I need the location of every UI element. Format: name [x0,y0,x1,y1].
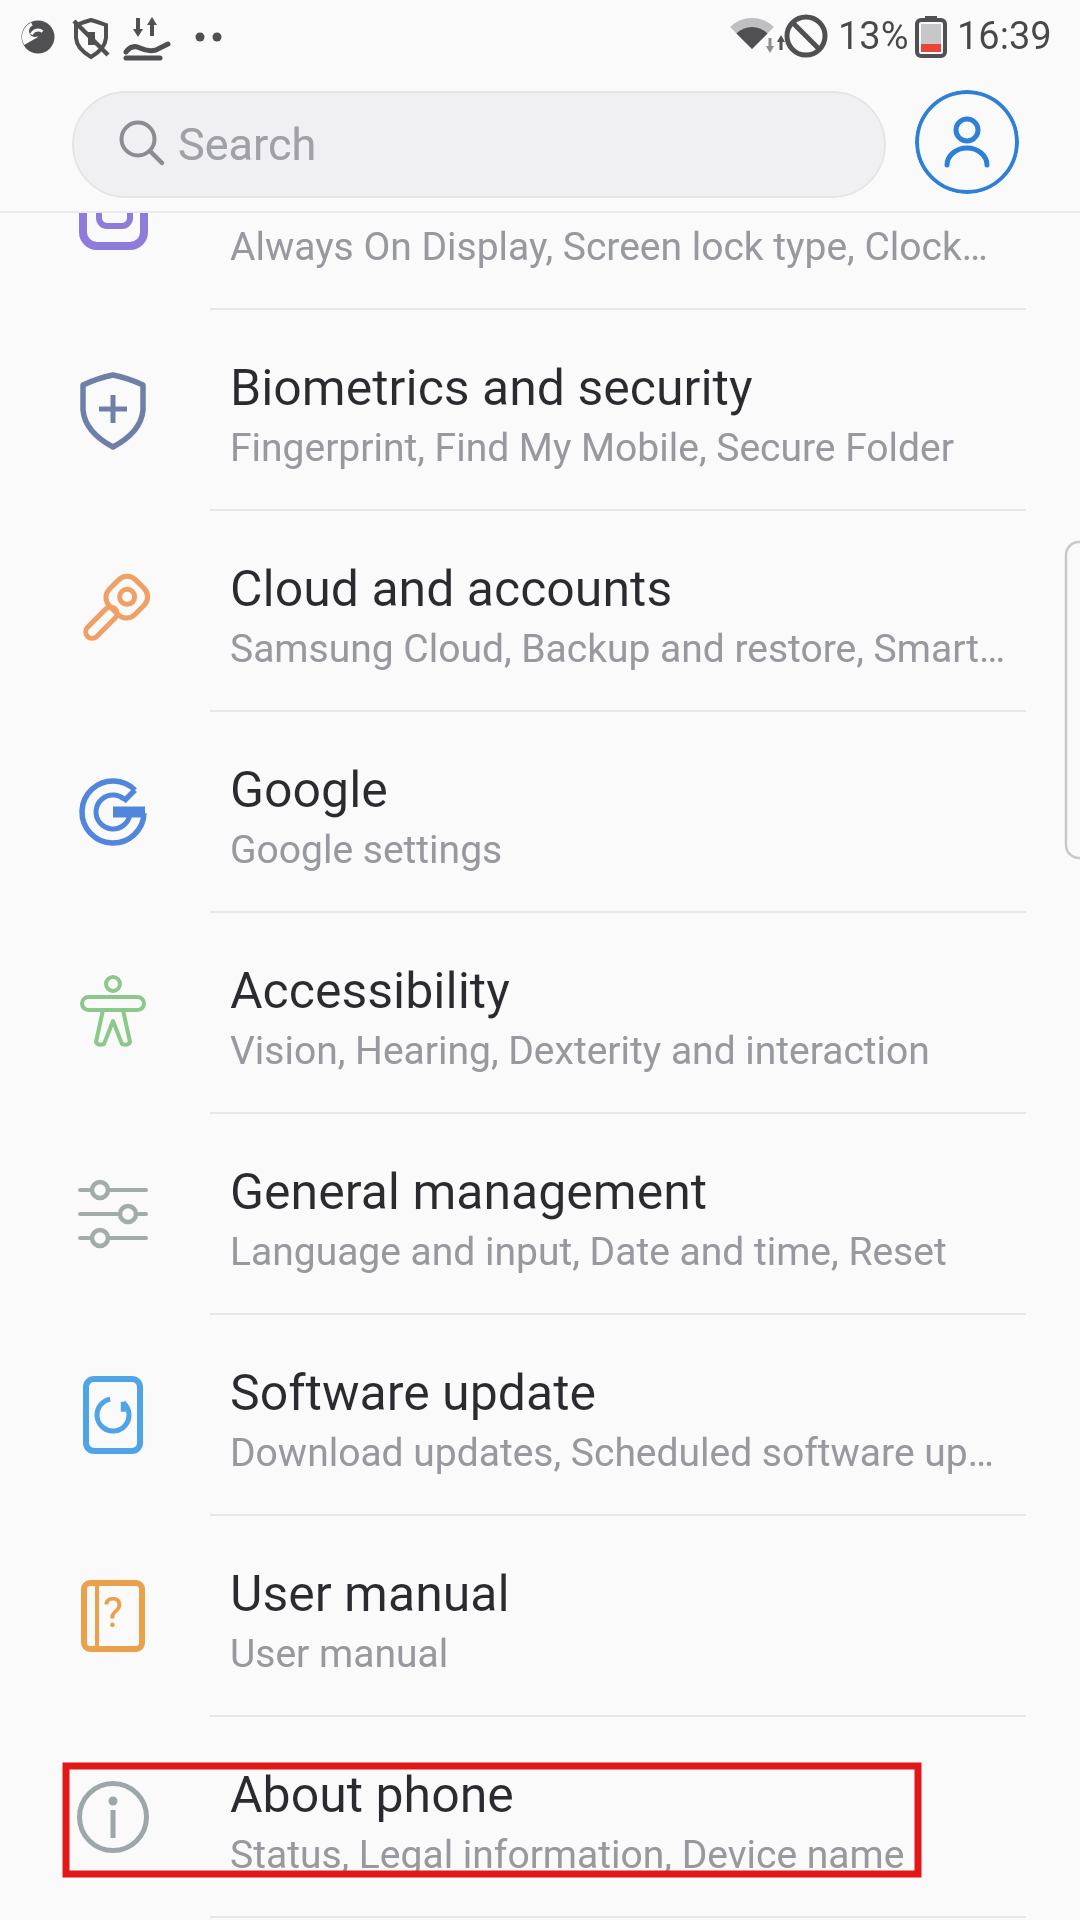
button[interactable]: General management [0,1114,1080,1315]
staticText: Software update [230,1364,597,1423]
button[interactable]: About phone [0,1717,1080,1918]
staticText: Biometrics and security [230,359,753,418]
staticText: Google [230,761,388,820]
staticText: Vision, Hearing, Dexterity and interacti… [230,1028,930,1074]
staticText: General management [230,1163,708,1222]
staticText: 16:39 [957,14,1052,59]
staticText: Cloud and accounts [230,560,673,619]
staticText: Search [178,118,317,171]
button[interactable]: Always On Display, Screen lock type, Clo… [0,109,1080,310]
staticText: 13% [838,14,909,59]
staticText: Google settings [230,827,503,873]
staticText: About phone [230,1766,514,1825]
button[interactable]: Search [72,91,886,198]
staticText: User manual [230,1565,510,1624]
staticText: ? [103,1588,123,1637]
staticText: Samsung Cloud, Backup and restore, Smart… [230,626,1006,672]
staticText: Fingerprint, Find My Mobile, Secure Fold… [230,425,954,471]
button[interactable]: Cloud and accounts [0,511,1080,712]
staticText: Always On Display, Screen lock type, Clo… [230,224,988,270]
staticText: User manual [230,1631,449,1677]
staticText: Language and input, Date and time, Reset [230,1229,947,1275]
button[interactable]: Google [0,712,1080,913]
staticText: Status, Legal information, Device name [230,1832,905,1878]
button[interactable]: Software update [0,1315,1080,1516]
staticText: Download updates, Scheduled software up… [230,1430,994,1476]
button[interactable]: User manual [0,1516,1080,1717]
staticText: Accessibility [230,962,510,1021]
button[interactable]: Biometrics and security [0,310,1080,511]
button[interactable] [915,90,1019,194]
button[interactable]: Accessibility [0,913,1080,1114]
